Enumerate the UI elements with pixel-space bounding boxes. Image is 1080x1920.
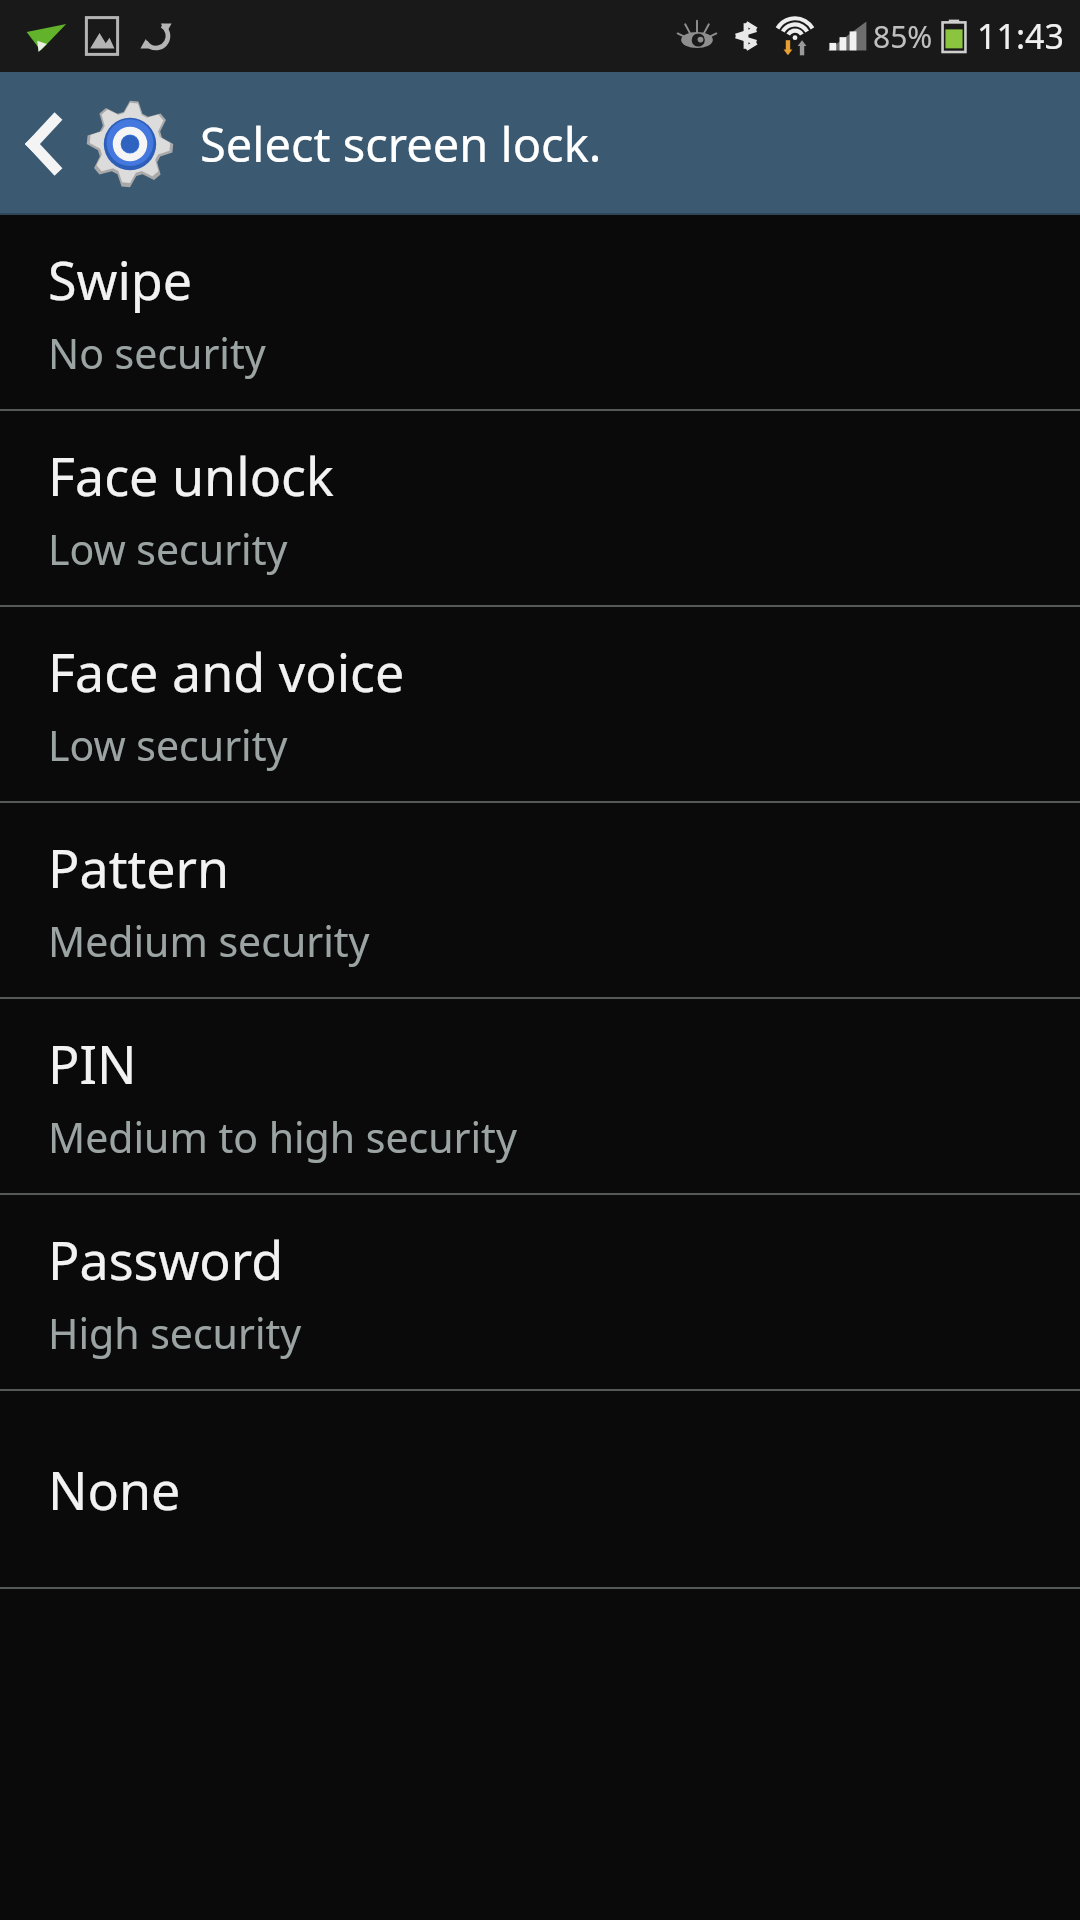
staticText: Swipe xyxy=(48,244,193,315)
staticText: Face unlock xyxy=(48,440,334,511)
button[interactable]: Password xyxy=(0,1195,1080,1389)
staticText: Low security xyxy=(48,521,288,577)
staticText: Select screen lock. xyxy=(200,112,602,176)
button[interactable]: PIN xyxy=(0,999,1080,1193)
staticText: Pattern xyxy=(48,832,230,903)
staticText: 85% xyxy=(873,16,933,57)
staticText: No security xyxy=(48,325,266,381)
staticText: Medium security xyxy=(48,913,370,969)
button[interactable]: None xyxy=(0,1391,1080,1587)
staticText: Medium to high security xyxy=(48,1109,517,1165)
staticText: 11:43 xyxy=(977,13,1064,59)
button[interactable]: Face and voice xyxy=(0,607,1080,801)
button[interactable]: Navigate up xyxy=(0,72,1080,215)
staticText: None xyxy=(48,1454,181,1525)
staticText: High security xyxy=(48,1305,302,1361)
staticText: Low security xyxy=(48,717,288,773)
staticText: PIN xyxy=(48,1028,137,1099)
button[interactable]: Swipe xyxy=(0,215,1080,409)
button[interactable]: Face unlock xyxy=(0,411,1080,605)
button[interactable]: Pattern xyxy=(0,803,1080,997)
staticText: Face and voice xyxy=(48,636,405,707)
staticText: Password xyxy=(48,1224,284,1295)
